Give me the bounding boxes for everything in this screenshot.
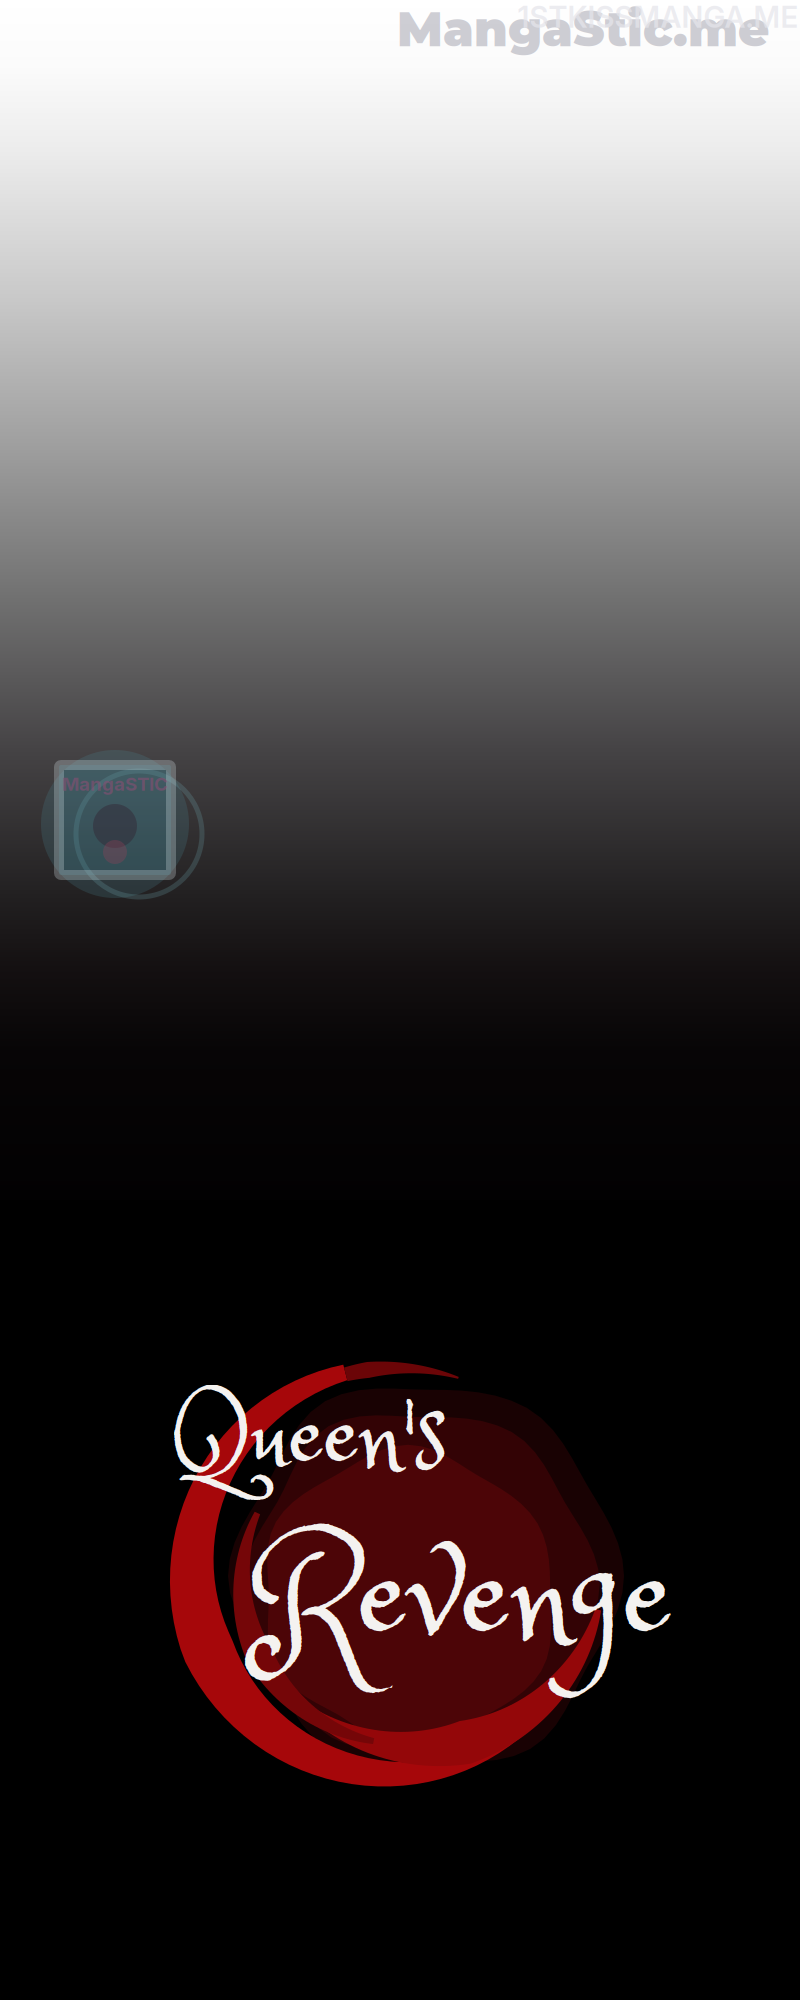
staticText: Queen's	[168, 1365, 447, 1517]
staticText: MangaSTIC	[62, 773, 168, 795]
staticText: 1STKISSMANGA.ME	[517, 0, 798, 35]
staticText: MangaStic.me	[397, 0, 769, 58]
staticText: Revenge	[256, 1495, 674, 1709]
